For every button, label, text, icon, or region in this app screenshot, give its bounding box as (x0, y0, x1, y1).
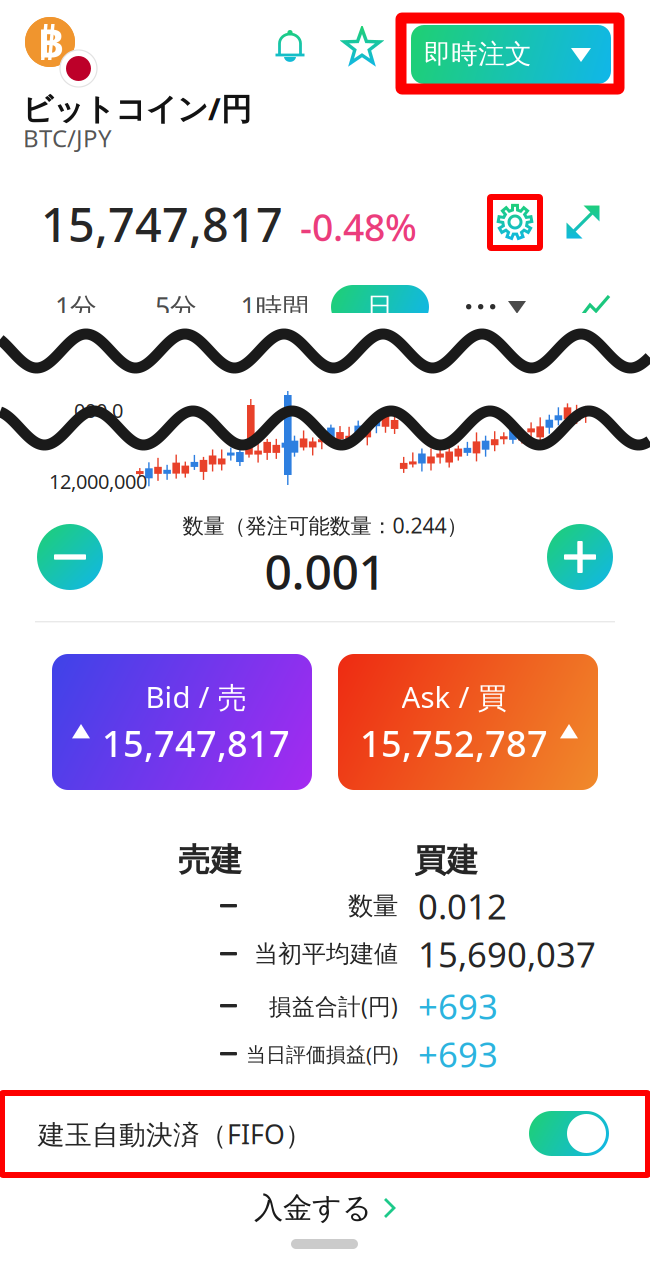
button[interactable]: Chart settings (487, 194, 543, 251)
staticText: 建玉自動決済（FIFO） (38, 1116, 312, 1152)
button[interactable]: More timeframes (466, 285, 538, 329)
button[interactable]: Decrease quantity (28, 515, 112, 599)
button[interactable]: 日 (331, 285, 429, 329)
staticText: 当日評価損益(円) (246, 1041, 398, 1067)
staticText: 15,747,817 (41, 193, 283, 255)
staticText: 0.001 (264, 539, 385, 603)
button[interactable]: Favorite (334, 19, 390, 75)
button[interactable]: Alerts (262, 19, 318, 75)
staticText: 12,000,000 (49, 468, 147, 495)
button[interactable]: 1時間 (229, 285, 321, 329)
staticText: 5分 (155, 289, 197, 325)
staticText: 入金する (254, 1190, 372, 1226)
staticText: 損益合計(円) (269, 991, 398, 1021)
staticText: 数量（発注可能数量：0.244） (182, 511, 467, 539)
button[interactable]: Increase quantity (538, 515, 622, 599)
button[interactable]: Full screen chart (554, 193, 612, 251)
staticText: 売建 (178, 840, 242, 880)
button[interactable]: Ask / 買 (338, 654, 598, 790)
staticText: +693 (418, 1031, 498, 1077)
staticText: +693 (418, 983, 498, 1029)
button[interactable]: 建玉自動決済（FIFO） (0, 1082, 650, 1178)
staticText: 買建 (414, 841, 478, 880)
staticText: BTC/JPY (23, 122, 112, 154)
staticText: 当初平均建値 (254, 939, 398, 969)
staticText: B (37, 15, 64, 68)
staticText: -0.48% (300, 202, 417, 252)
staticText: 1時間 (240, 289, 309, 325)
staticText: 000,0 (74, 397, 123, 424)
staticText: Ask / 買 (401, 677, 506, 716)
staticText: ビットコイン/円 (22, 88, 252, 129)
button[interactable]: 入金する (0, 1178, 650, 1238)
staticText: 即時注文 (424, 38, 532, 70)
staticText: 0.012 (418, 883, 507, 929)
staticText: Bid / 売 (145, 677, 246, 716)
button[interactable]: Bid / 売 (52, 654, 312, 790)
button[interactable]: 即時注文 (398, 15, 622, 92)
staticText: 1分 (55, 289, 97, 325)
staticText: 数量 (348, 890, 398, 921)
staticText: 15,752,787 (360, 719, 548, 767)
staticText: 日 (366, 291, 393, 323)
button[interactable]: 1分 (34, 285, 118, 329)
button[interactable]: Indicators (566, 285, 624, 329)
staticText: 15,747,817 (102, 719, 290, 767)
button[interactable]: 5分 (134, 285, 218, 329)
staticText: 15,690,037 (418, 931, 596, 977)
